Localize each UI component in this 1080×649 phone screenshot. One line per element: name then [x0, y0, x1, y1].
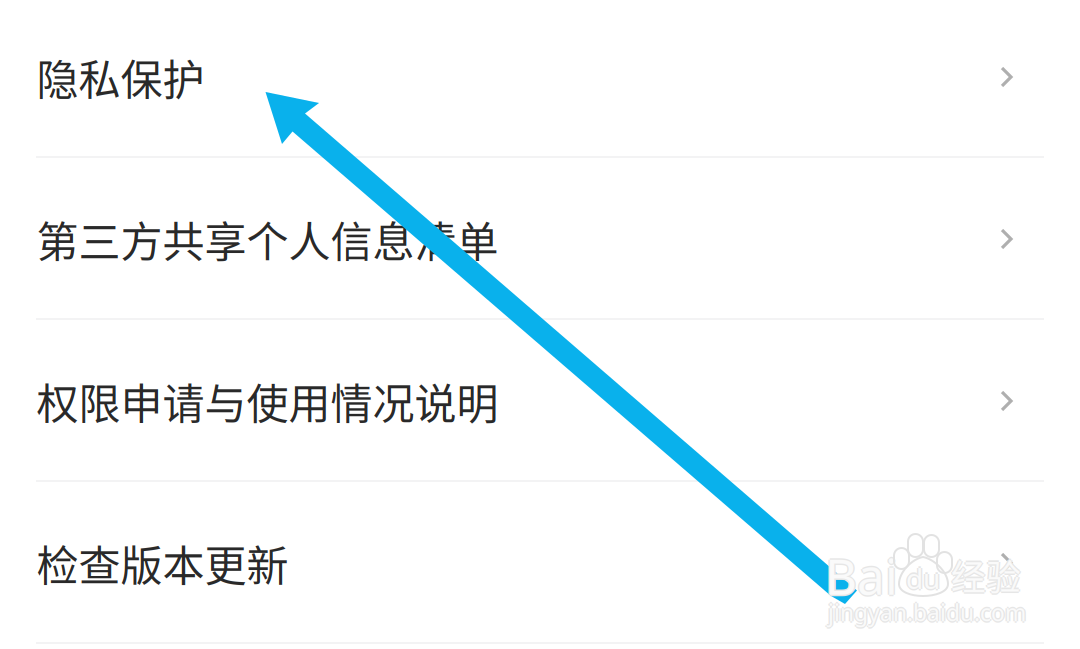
staticText: du [906, 561, 940, 599]
staticText: 经验 [951, 550, 1021, 600]
staticText: jingyan.baidu.com [828, 595, 1026, 626]
staticText: 经验 [953, 550, 1023, 600]
staticText: Bai [827, 542, 900, 609]
staticText: Bai [825, 542, 898, 609]
staticText: 检查版本更新 [36, 533, 288, 593]
button[interactable]: 权限申请与使用情况说明 [0, 320, 1080, 482]
staticText: Bai [823, 542, 896, 609]
staticText: Bai [825, 544, 898, 611]
button[interactable]: 检查版本更新 [0, 482, 1080, 644]
staticText: jingyan.baidu.com [826, 597, 1024, 628]
staticText: 经验 [951, 548, 1021, 599]
staticText: 经验 [951, 552, 1021, 602]
button[interactable]: 隐私保护 [0, 0, 1080, 158]
staticText: du [904, 559, 938, 597]
staticText: jingyan.baidu.com [830, 597, 1028, 628]
staticText: 经验 [949, 550, 1019, 600]
staticText: jingyan.baidu.com [828, 597, 1026, 628]
staticText: 隐私保护 [36, 47, 204, 107]
staticText: Bai [825, 540, 898, 608]
staticText: jingyan.baidu.com [828, 599, 1026, 629]
button[interactable]: 第三方共享个人信息清单 [0, 158, 1080, 320]
staticText: 第三方共享个人信息清单 [36, 209, 498, 269]
staticText: du [908, 559, 942, 597]
staticText: du [906, 557, 940, 595]
staticText: 权限申请与使用情况说明 [36, 371, 498, 431]
staticText: du [906, 559, 940, 597]
